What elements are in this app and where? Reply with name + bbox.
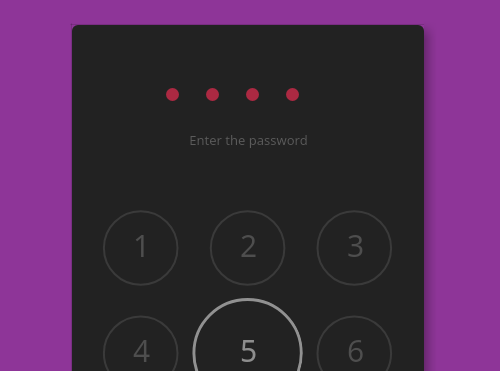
button[interactable]: Digit 5 <box>191 297 303 371</box>
button[interactable]: Digit 2 <box>208 209 286 287</box>
button[interactable]: Digit 6 <box>315 314 393 371</box>
staticText: 3 <box>347 225 365 266</box>
staticText: Enter the password <box>189 131 308 149</box>
staticText: 5 <box>240 330 258 371</box>
staticText: 4 <box>133 330 151 371</box>
button[interactable]: Digit 4 <box>101 314 179 371</box>
button[interactable]: Digit 3 <box>315 209 393 287</box>
staticText: 2 <box>240 225 258 266</box>
button[interactable]: Digit 1 <box>101 209 179 287</box>
staticText: 6 <box>347 330 365 371</box>
staticText: 1 <box>133 225 151 266</box>
